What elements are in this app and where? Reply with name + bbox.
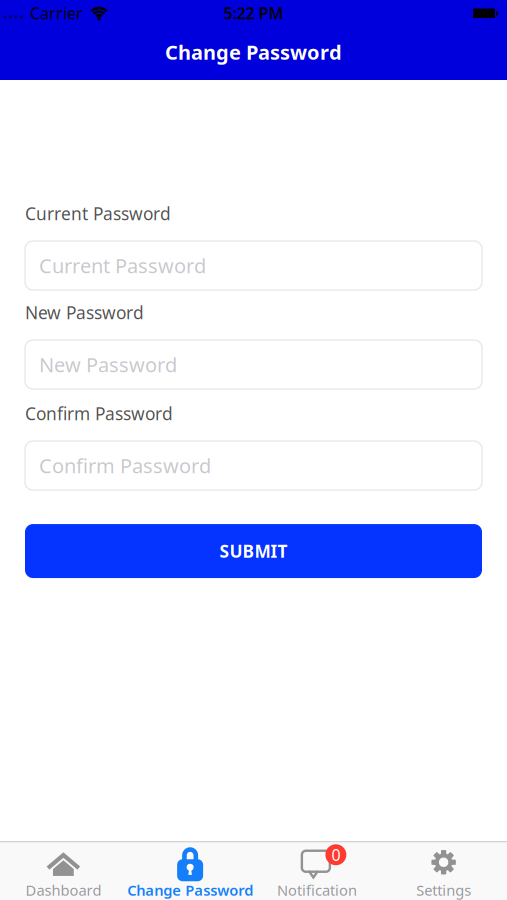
staticText: Confirm Password (39, 452, 211, 479)
staticText: SUBMIT (219, 539, 287, 562)
staticText: New Password (39, 351, 177, 378)
button[interactable]: 0 (253, 846, 380, 900)
staticText: Change Password (127, 880, 253, 900)
staticText: Current Password (39, 252, 206, 279)
staticText: Change Password (165, 39, 342, 65)
button[interactable]: Change Password (127, 846, 254, 900)
button[interactable]: SUBMIT (25, 524, 482, 578)
staticText: Notification (277, 880, 357, 900)
button[interactable]: Settings (380, 846, 507, 900)
staticText: Current Password (25, 202, 171, 225)
staticText: 0 (331, 844, 340, 865)
staticText: Settings (416, 880, 471, 900)
button[interactable]: Dashboard (0, 846, 127, 900)
staticText: Dashboard (25, 880, 101, 900)
staticText: Carrier (30, 2, 83, 24)
staticText: Confirm Password (25, 402, 173, 425)
staticText: 5:22 PM (223, 2, 283, 24)
staticText: New Password (25, 301, 144, 324)
